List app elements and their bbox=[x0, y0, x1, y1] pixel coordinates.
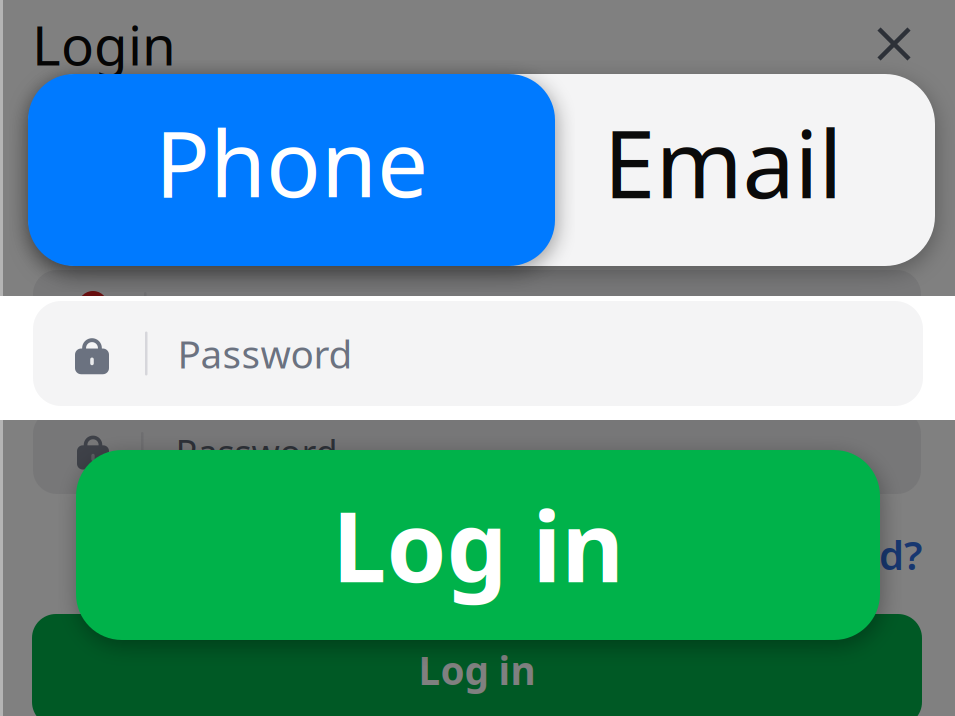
staticText: Password bbox=[177, 328, 352, 379]
staticText: Log in bbox=[332, 481, 623, 609]
staticText: Email bbox=[644, 97, 719, 135]
button[interactable]: Close bbox=[866, 16, 922, 72]
button[interactable]: Email bbox=[555, 74, 891, 266]
staticText: Forgot password? bbox=[576, 528, 922, 581]
button[interactable]: Phone bbox=[28, 74, 555, 266]
button[interactable]: Forgot password? bbox=[32, 528, 922, 581]
staticText: Login bbox=[32, 8, 176, 81]
staticText: Phone bbox=[209, 97, 295, 135]
staticText: Password bbox=[175, 428, 337, 476]
button[interactable]: Phone bbox=[37, 88, 467, 144]
staticText: Log in bbox=[418, 644, 535, 696]
button[interactable]: Log in bbox=[76, 450, 880, 640]
staticText: Email bbox=[603, 100, 842, 224]
staticText: Phone number bbox=[180, 286, 452, 338]
button[interactable]: Email bbox=[467, 88, 897, 144]
staticText: Phone bbox=[155, 102, 428, 222]
button[interactable]: Log in bbox=[32, 614, 922, 716]
